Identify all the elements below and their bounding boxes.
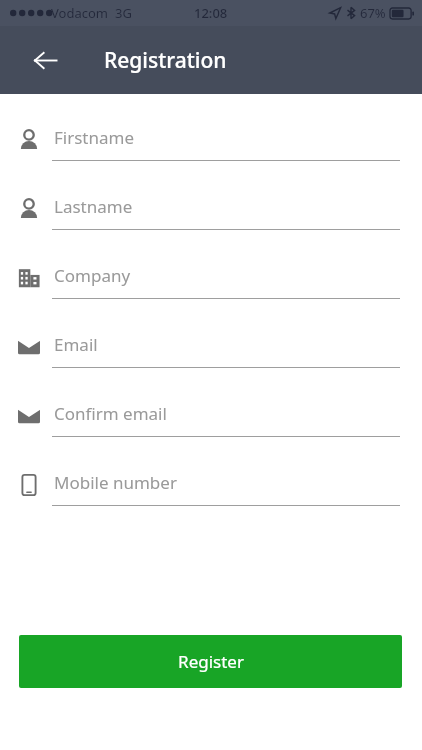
button[interactable]: Company (0, 258, 422, 327)
button[interactable]: Lastname (0, 189, 422, 258)
staticText: Lastname (54, 195, 133, 218)
staticText: Vodacom (51, 4, 108, 22)
staticText: Registration (104, 46, 227, 75)
button[interactable]: Register (19, 635, 402, 688)
button[interactable]: Firstname (0, 120, 422, 189)
staticText: 3G (115, 4, 132, 22)
staticText: Mobile number (54, 471, 177, 494)
staticText: Register (178, 650, 244, 673)
staticText: Confirm email (54, 402, 167, 425)
staticText: Firstname (54, 126, 135, 149)
button[interactable]: Mobile number (0, 465, 422, 534)
staticText: 12:08 (194, 4, 228, 22)
button[interactable]: Back (25, 40, 65, 80)
button[interactable]: Email (0, 327, 422, 396)
staticText: 67% (360, 4, 386, 22)
staticText: Email (54, 333, 98, 356)
staticText: Company (54, 264, 131, 287)
button[interactable]: Confirm email (0, 396, 422, 465)
